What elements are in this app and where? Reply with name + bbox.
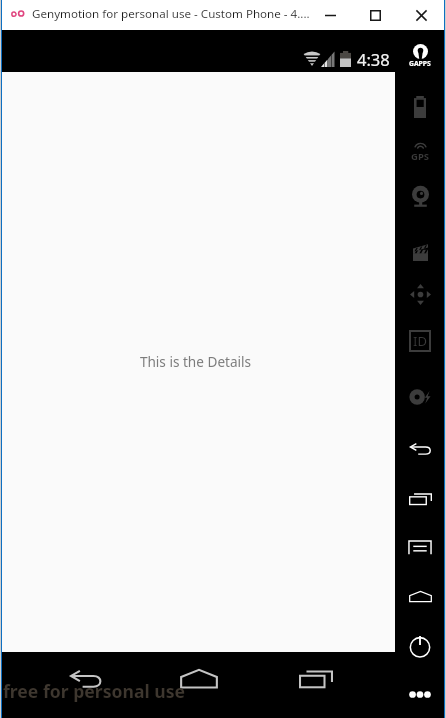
button[interactable]: GPS: [398, 132, 442, 172]
staticText: 4:38: [357, 48, 390, 70]
button[interactable]: Identifiers: [398, 321, 442, 361]
staticText: Genymotion for personal use - Custom Pho…: [32, 6, 312, 22]
button[interactable]: Screen record: [398, 231, 442, 271]
button[interactable]: Menu: [398, 527, 442, 567]
button[interactable]: Minimize: [307, 0, 353, 30]
button[interactable]: Camera: [398, 177, 442, 217]
button[interactable]: Home: [398, 576, 442, 616]
button[interactable]: Back: [398, 429, 442, 469]
staticText: GAPPS: [409, 59, 431, 68]
button[interactable]: More: [398, 674, 442, 714]
button[interactable]: Battery: [398, 87, 442, 127]
staticText: free for personal use: [3, 679, 186, 703]
button[interactable]: Home: [177, 656, 221, 700]
button[interactable]: GApps: [398, 36, 442, 76]
button[interactable]: Close: [398, 0, 444, 30]
staticText: GPS: [411, 150, 430, 163]
button[interactable]: Recents: [398, 479, 442, 519]
staticText: This is the Details: [0, 352, 392, 371]
button[interactable]: Recents: [294, 657, 338, 701]
button[interactable]: Power: [398, 626, 442, 666]
button[interactable]: Accelerometer: [398, 274, 442, 314]
button[interactable]: Back: [64, 657, 108, 701]
staticText: ID: [413, 332, 427, 350]
button[interactable]: Disk IO: [398, 377, 442, 417]
button[interactable]: Maximize: [352, 0, 398, 30]
